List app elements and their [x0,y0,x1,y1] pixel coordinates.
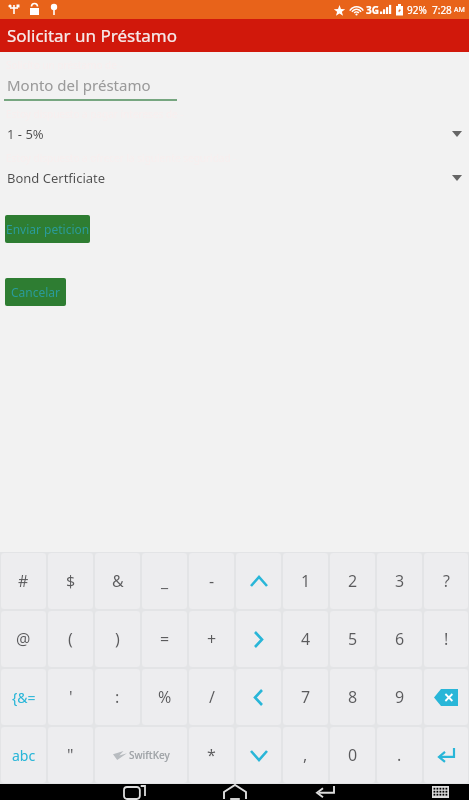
button[interactable]: ! [424,611,468,667]
staticText: 6 [395,628,405,650]
staticText: " [67,744,74,766]
button[interactable]: Previous [236,669,281,725]
staticText: 7 [301,686,311,708]
button[interactable]: 9 [377,669,422,725]
button[interactable]: Enter [424,727,468,783]
staticText: 3 [395,570,405,592]
staticText: 9 [395,686,405,708]
button[interactable]: ? [424,553,468,609]
staticText: ! [444,628,449,650]
staticText: Enviar peticion [6,221,90,237]
staticText: = [160,628,170,650]
button[interactable]: abc [1,727,46,783]
staticText: # [18,570,29,592]
staticText: 0 [348,744,358,766]
button[interactable]: Shift [236,553,281,609]
staticText: 3G [366,3,379,17]
button[interactable]: Space [95,727,187,783]
button[interactable]: {&= [1,669,46,725]
button[interactable]: 8 [330,669,375,725]
staticText: ? [443,570,450,592]
button[interactable]: Cancelar [5,278,66,306]
button[interactable]: Monto del préstamo [0,72,469,102]
button[interactable]: 1 [283,553,328,609]
button[interactable]: % [142,669,187,725]
staticText: ( [68,628,73,650]
button[interactable]: . [377,727,422,783]
staticText: * [207,744,216,766]
button[interactable]: Recents [112,784,158,800]
staticText: 2 [348,570,358,592]
button[interactable]: @ [1,611,46,667]
staticText: % [158,686,172,708]
button[interactable]: Backspace [424,669,468,725]
staticText: 1 - 5% [7,125,44,143]
button[interactable]: 7 [283,669,328,725]
staticText: ) [115,628,120,650]
staticText: SwiftKey [129,748,170,762]
staticText: ' [69,686,73,708]
button[interactable]: _ [142,553,187,609]
button[interactable]: 1 - 5% [0,121,469,147]
button[interactable]: 5 [330,611,375,667]
button[interactable]: & [95,553,140,609]
button[interactable]: 0 [330,727,375,783]
staticText: 8 [348,686,358,708]
button[interactable]: 4 [283,611,328,667]
button[interactable]: / [189,669,234,725]
button[interactable]: * [189,727,234,783]
staticText: 7:28 [432,3,452,17]
button[interactable]: + [189,611,234,667]
staticText: Solicitar un Préstamo [7,24,178,47]
button[interactable]: Next [236,611,281,667]
button[interactable]: Switch keyboard [425,784,455,800]
staticText: @ [16,628,31,650]
button[interactable]: Enviar peticion [5,215,90,243]
staticText: + [207,628,217,650]
staticText: & [112,570,124,592]
button[interactable]: ' [48,669,93,725]
button[interactable]: $ [48,553,93,609]
button[interactable]: 3 [377,553,422,609]
button[interactable]: " [48,727,93,783]
button[interactable]: 2 [330,553,375,609]
staticText: 92% [407,3,427,17]
staticText: _ [161,570,169,592]
staticText: / [209,686,215,708]
button[interactable]: Hide [236,727,281,783]
button[interactable]: , [283,727,328,783]
staticText: 5 [348,628,358,650]
button[interactable]: Bond Certficiate [0,165,469,191]
staticText: , [303,744,308,766]
staticText: abc [12,746,36,765]
button[interactable]: # [1,553,46,609]
button[interactable]: ) [95,611,140,667]
staticText: $ [66,570,76,592]
staticText: Cancelar [11,284,61,300]
staticText: . [397,744,402,766]
staticText: : [115,686,120,708]
button[interactable]: - [189,553,234,609]
button[interactable]: : [95,669,140,725]
button[interactable]: ( [48,611,93,667]
button[interactable]: 6 [377,611,422,667]
staticText: AM [454,5,465,15]
button[interactable]: = [142,611,187,667]
staticText: - [209,570,215,592]
staticText: {&= [12,688,36,707]
staticText: Monto del préstamo [7,75,151,95]
button[interactable]: Back [301,784,347,800]
button[interactable]: Home [212,784,258,800]
staticText: 4 [301,628,311,650]
staticText: 1 [301,570,311,592]
staticText: Bond Certficiate [7,169,106,187]
